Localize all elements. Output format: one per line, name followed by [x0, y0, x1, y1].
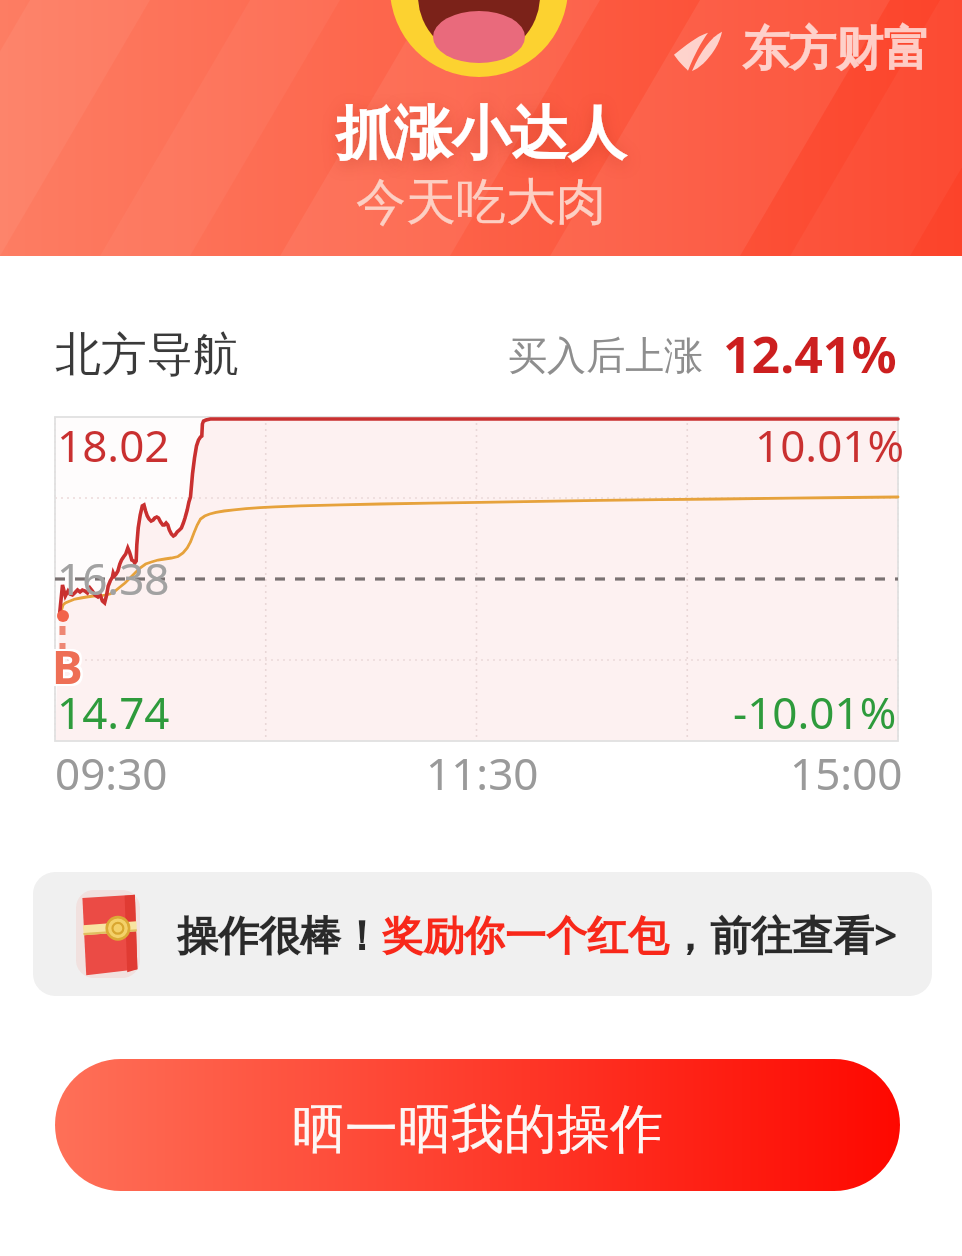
staticText: 15:00	[790, 743, 903, 803]
staticText: B	[54, 637, 85, 700]
button[interactable]: 晒一晒我的操作	[55, 1059, 900, 1191]
staticText: 买入后上涨	[508, 331, 703, 380]
staticText: B	[52, 635, 83, 698]
button[interactable]: 操作很棒！奖励你一个红包，前往查看>	[33, 872, 932, 996]
staticText: 北方导航	[55, 326, 239, 384]
staticText: B	[50, 635, 81, 698]
button[interactable]: 东方财富	[674, 16, 934, 83]
staticText: 抓涨小达人	[336, 97, 626, 170]
staticText: 14.74	[57, 682, 170, 742]
staticText: 东方财富	[742, 20, 930, 79]
staticText: 晒一晒我的操作	[292, 1096, 663, 1163]
staticText: 18.02	[57, 415, 170, 475]
staticText: 11:30	[426, 743, 539, 803]
button[interactable]: 北方导航 分时走势图	[55, 417, 898, 741]
staticText: B	[54, 635, 85, 698]
staticText: B	[52, 633, 83, 696]
staticText: 09:30	[55, 743, 168, 803]
staticText: 10.01%	[755, 415, 905, 475]
staticText: 操作很棒！奖励你一个红包，前往查看>	[177, 906, 898, 962]
staticText: 12.41%	[723, 320, 897, 388]
staticText: B	[52, 637, 83, 700]
staticText: B	[50, 637, 81, 700]
staticText: B	[50, 633, 81, 696]
staticText: B	[54, 633, 85, 696]
staticText: -10.01%	[733, 682, 897, 742]
staticText: 今天吃大肉	[356, 171, 606, 234]
staticText: 16.38	[57, 548, 170, 608]
